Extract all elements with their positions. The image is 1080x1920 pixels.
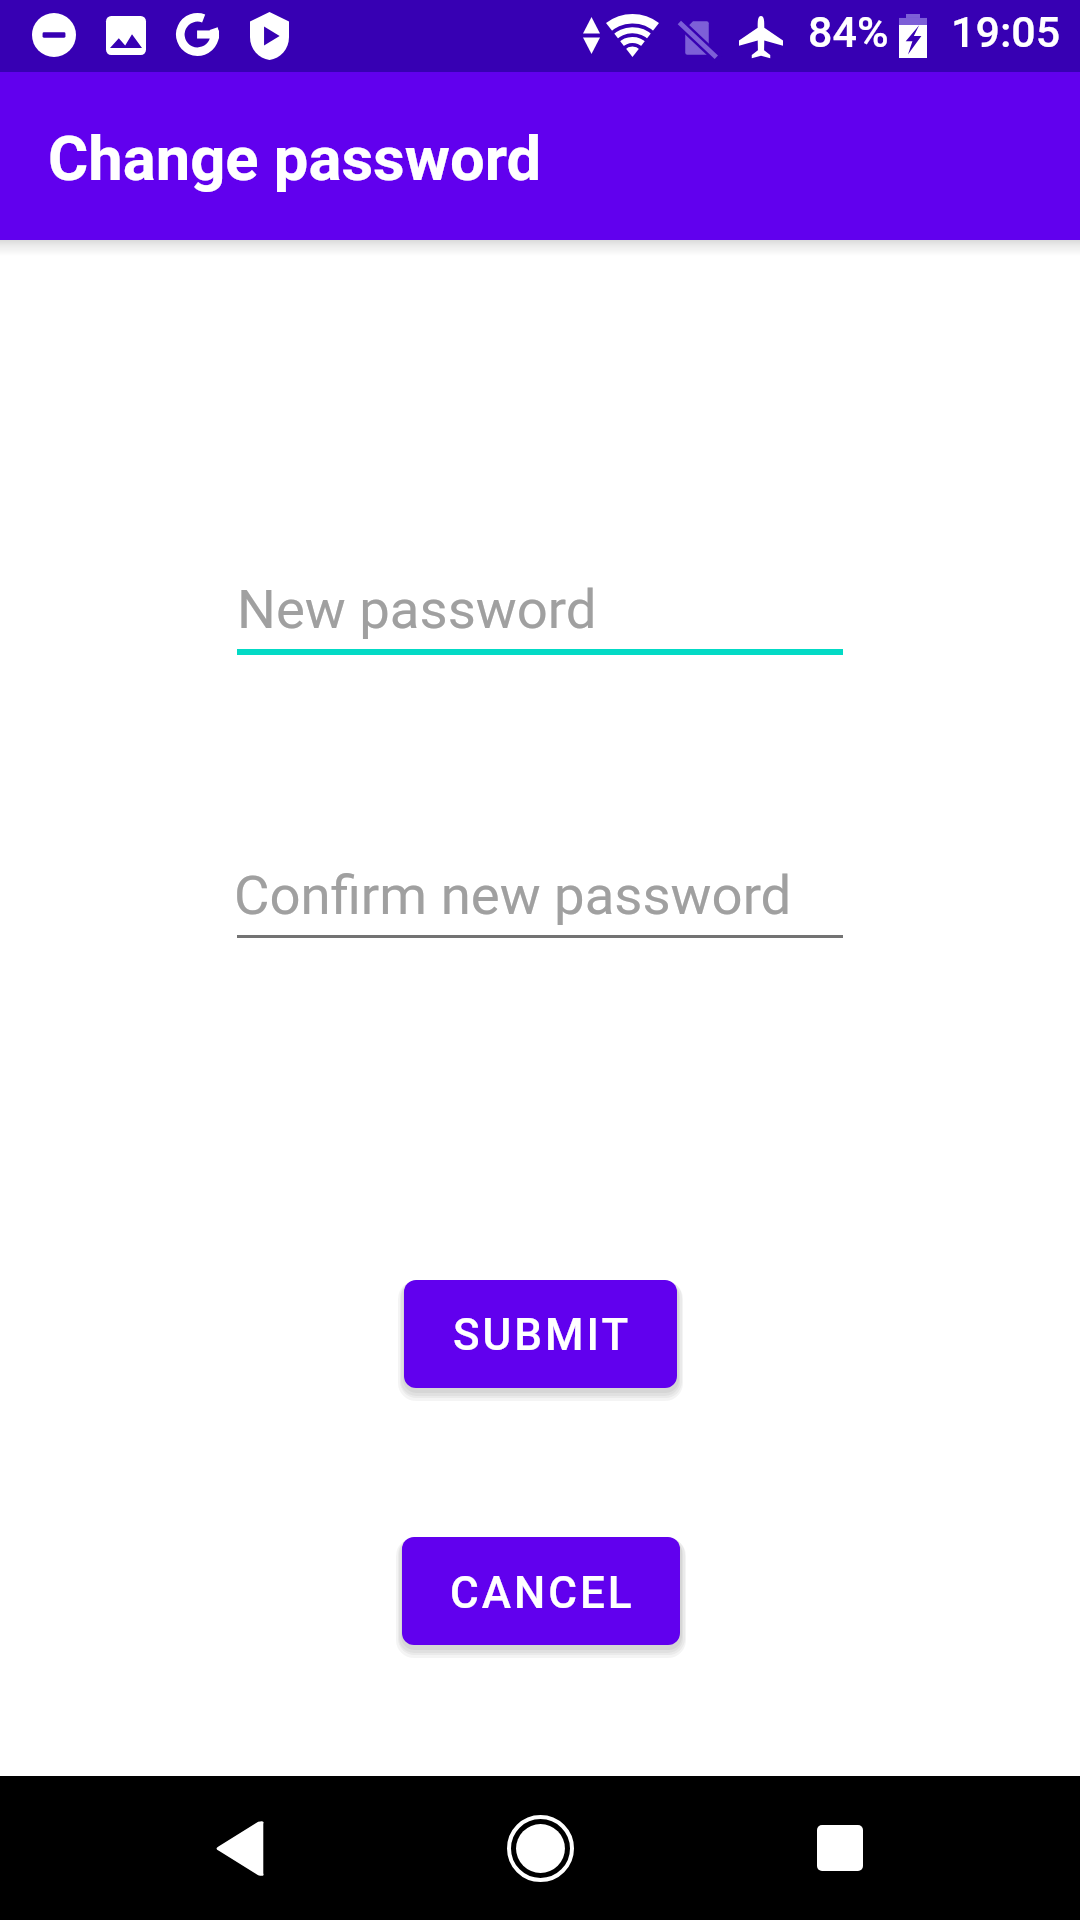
staticText: Change password bbox=[48, 123, 542, 195]
button[interactable]: Back bbox=[168, 1776, 312, 1920]
button[interactable]: Home bbox=[468, 1776, 612, 1920]
button[interactable]: Recent apps bbox=[768, 1776, 912, 1920]
staticText: SUBMIT bbox=[453, 1309, 632, 1361]
button[interactable]: New password bbox=[237, 570, 843, 655]
staticText: 19:05 bbox=[951, 7, 1061, 57]
staticText: 84% bbox=[808, 7, 889, 57]
button[interactable]: SUBMIT bbox=[404, 1280, 677, 1388]
staticText: Confirm new password bbox=[234, 863, 792, 927]
staticText: New password bbox=[237, 577, 597, 641]
button[interactable]: CANCEL bbox=[402, 1537, 680, 1645]
button[interactable]: Confirm new password bbox=[237, 856, 843, 938]
staticText: CANCEL bbox=[450, 1567, 635, 1619]
